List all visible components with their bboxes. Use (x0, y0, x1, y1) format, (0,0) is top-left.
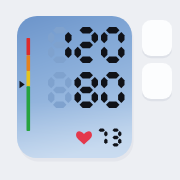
button[interactable]: Memory (142, 63, 172, 99)
button[interactable]: Blood pressure 120 over 80, pulse 73 (17, 16, 132, 158)
button[interactable]: Start measurement (142, 20, 172, 56)
